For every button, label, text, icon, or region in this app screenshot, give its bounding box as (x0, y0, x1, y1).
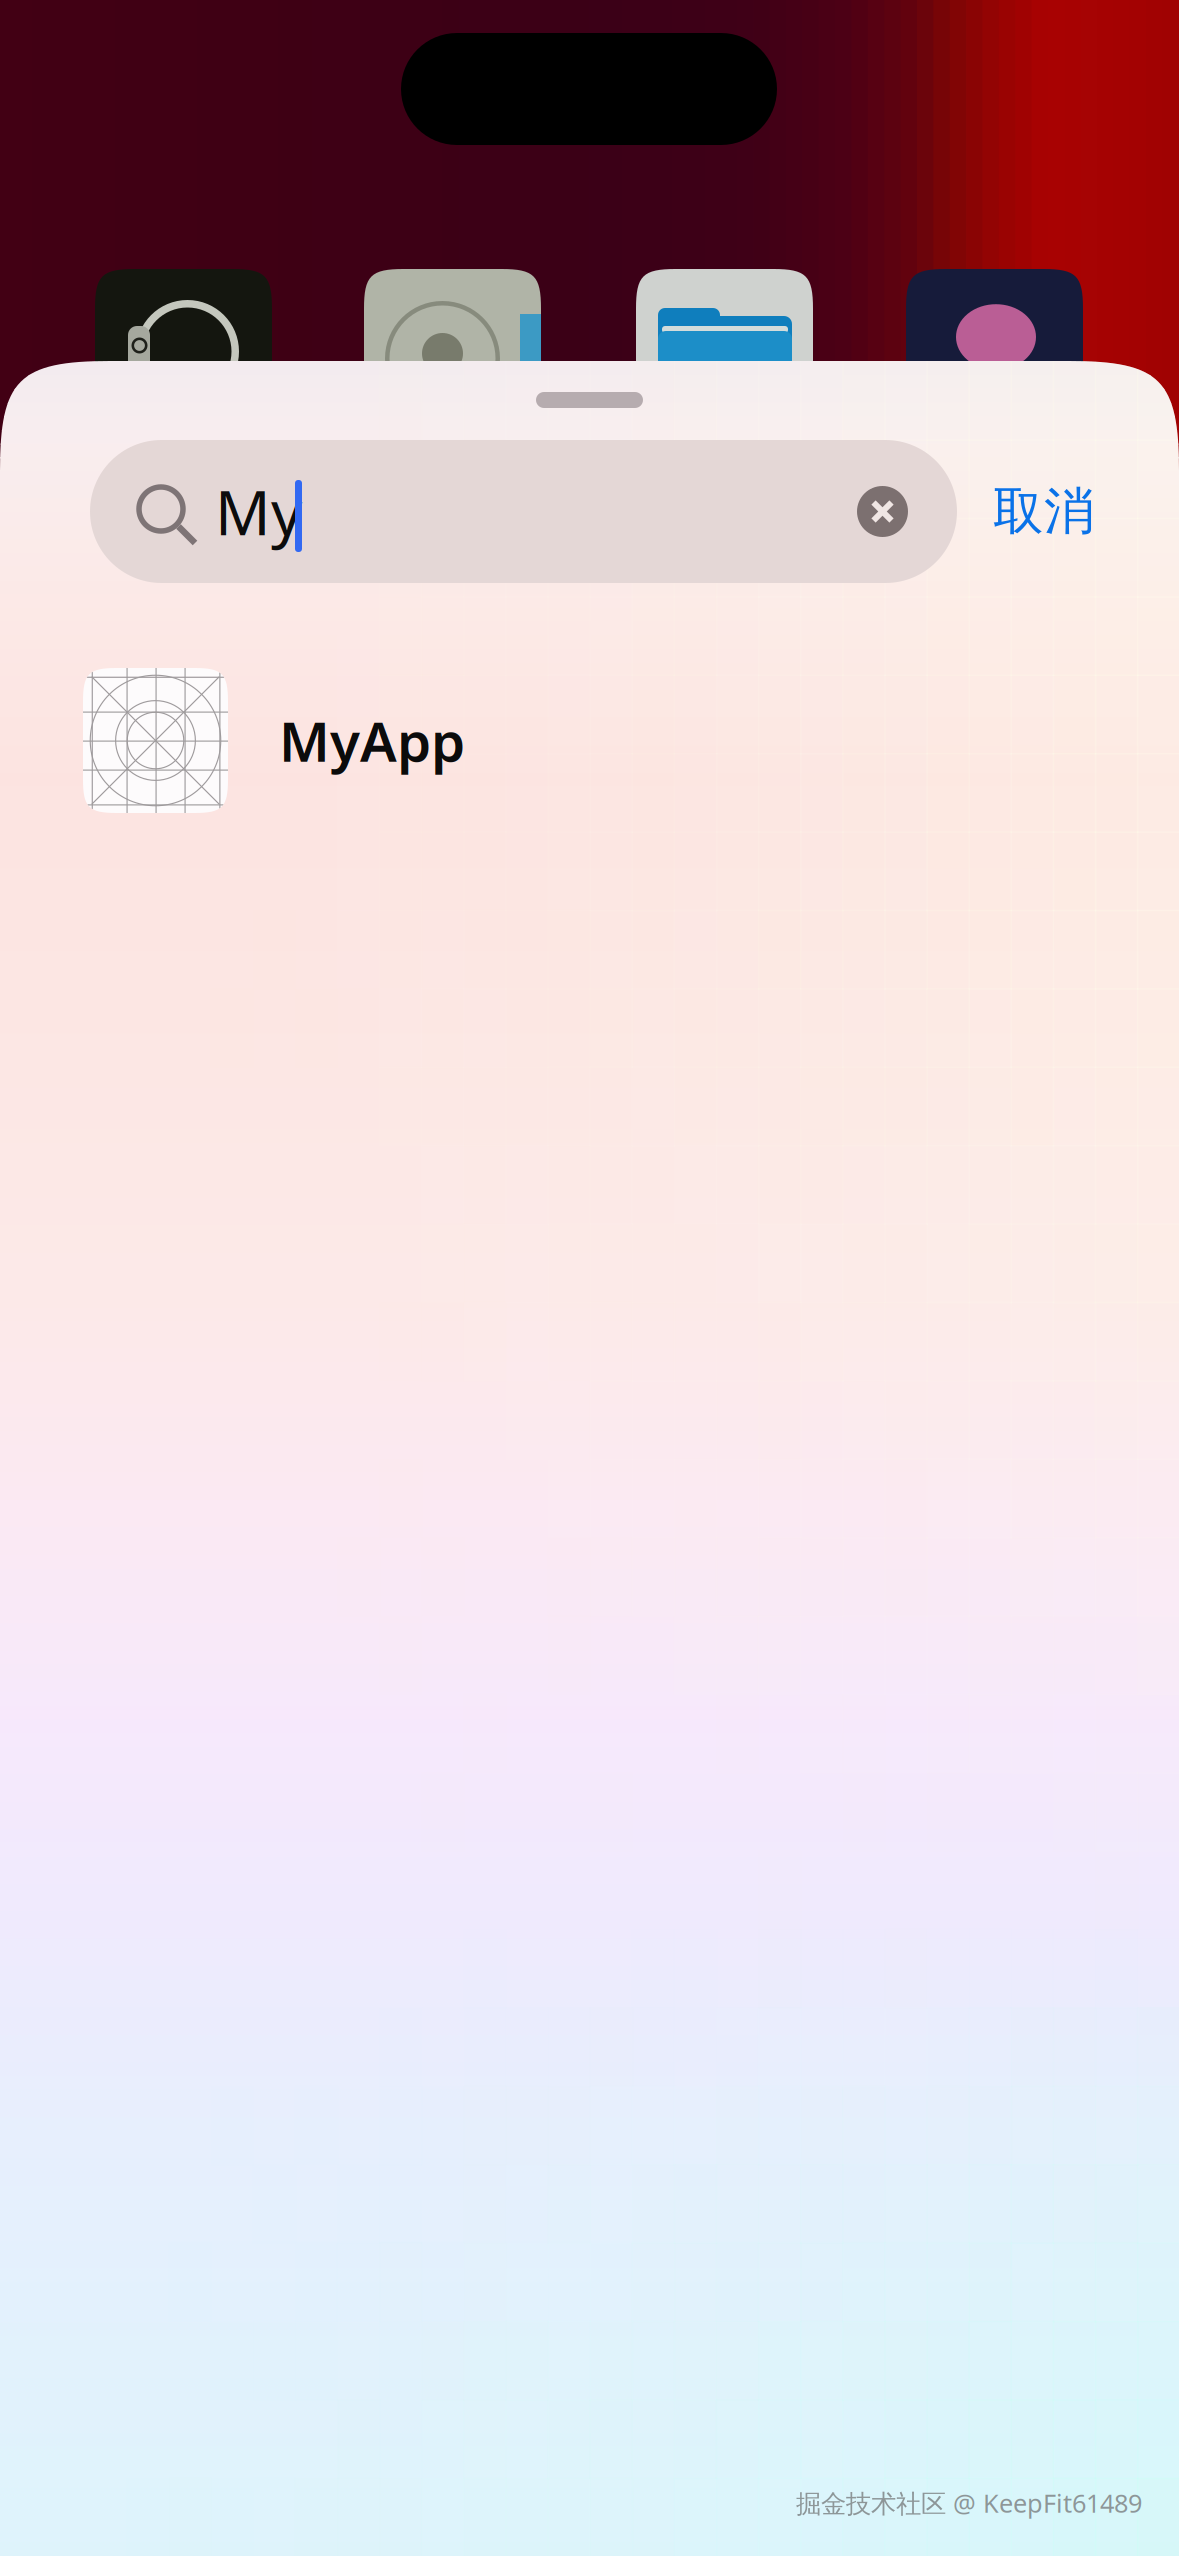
staticText: 取消 (993, 480, 1095, 543)
staticText: 掘金技术社区 @ KeepFit61489 (796, 2486, 1142, 2520)
button[interactable]: MyApp (83, 668, 1083, 813)
button[interactable]: My (90, 440, 957, 583)
button[interactable]: 取消 (993, 440, 1143, 583)
staticText: MyApp (279, 704, 465, 777)
staticText: My (215, 471, 302, 552)
